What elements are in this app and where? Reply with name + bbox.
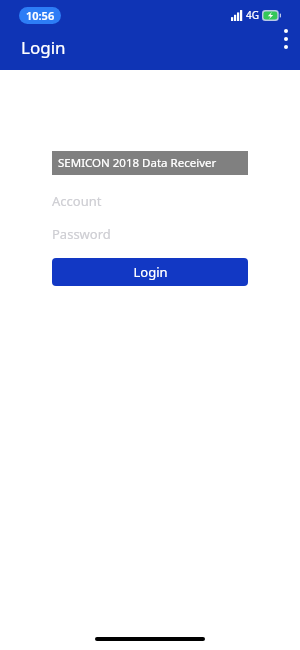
staticText: Login [133, 263, 168, 281]
staticText: 10:56 [26, 8, 55, 23]
staticText: SEMICON 2018 Data Receiver [58, 155, 217, 171]
button[interactable]: Login [52, 258, 248, 286]
button[interactable]: More options [273, 24, 299, 54]
button[interactable]: Password [52, 224, 248, 244]
staticText: Login [21, 36, 66, 59]
staticText: 4G [246, 8, 259, 22]
staticText: Account [52, 192, 102, 210]
button[interactable]: Account [52, 191, 248, 211]
staticText: Password [52, 225, 111, 243]
